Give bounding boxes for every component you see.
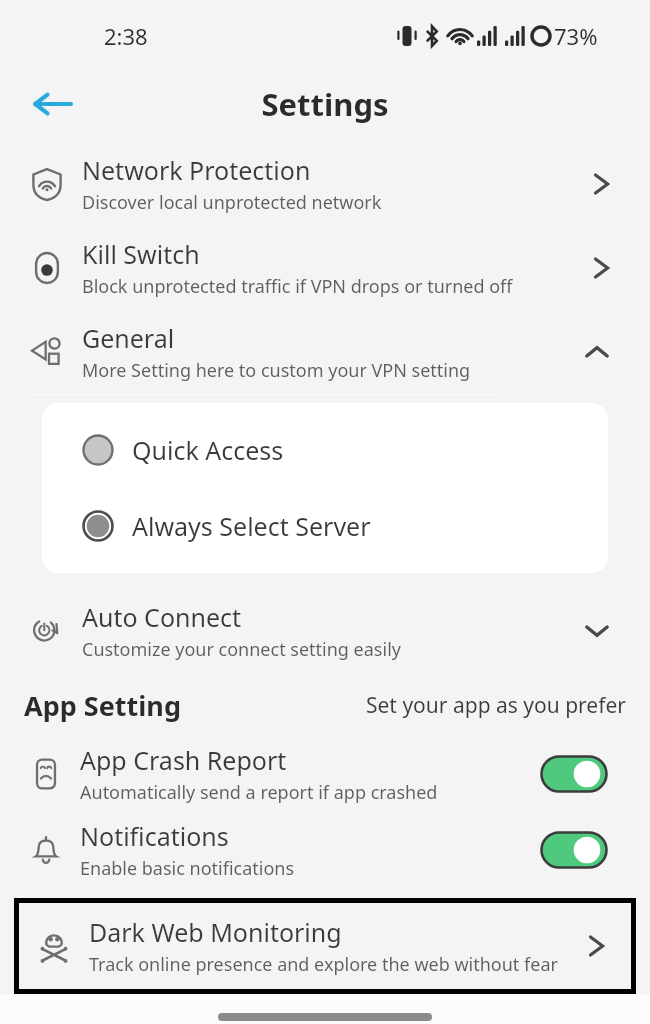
staticText: General <box>82 321 175 355</box>
staticText: App Crash Report <box>80 743 287 777</box>
staticText: Discover local unprotected network <box>82 190 382 215</box>
staticText: Network Protection <box>82 153 311 187</box>
button[interactable]: Network Protection <box>0 142 650 226</box>
staticText: Auto Connect <box>82 600 242 634</box>
staticText: More Setting here to custom your VPN set… <box>82 358 471 383</box>
staticText: Set your app as you prefer <box>366 691 626 720</box>
button[interactable]: Quick Access <box>42 421 608 479</box>
button[interactable]: Kill Switch <box>0 226 650 310</box>
button[interactable]: Notifications toggle <box>540 831 608 869</box>
button[interactable]: Always Select Server <box>42 497 608 555</box>
staticText: App Setting <box>24 687 181 724</box>
staticText: Kill Switch <box>82 237 200 271</box>
staticText: Automatically send a report if app crash… <box>80 780 438 805</box>
button[interactable]: Back <box>26 78 78 130</box>
staticText: 73% <box>554 21 598 51</box>
button[interactable]: Notifications <box>0 812 650 888</box>
staticText: 2:38 <box>104 21 148 51</box>
button[interactable]: Auto Connect <box>0 589 650 673</box>
staticText: Enable basic notifications <box>80 856 295 881</box>
staticText: Notifications <box>80 819 229 853</box>
button[interactable]: Dark Web Monitoring <box>19 903 631 989</box>
button[interactable]: App Crash Report <box>0 736 650 812</box>
button[interactable]: General <box>0 310 650 394</box>
staticText: Dark Web Monitoring <box>89 915 342 949</box>
staticText: Settings <box>261 83 389 125</box>
staticText: Customize your connect setting easily <box>82 637 401 662</box>
staticText: Quick Access <box>132 433 284 467</box>
staticText: Track online presence and explore the we… <box>89 952 558 977</box>
staticText: Always Select Server <box>132 509 371 543</box>
button[interactable]: App Crash Report toggle <box>540 755 608 793</box>
staticText: Block unprotected traffic if VPN drops o… <box>82 274 513 299</box>
